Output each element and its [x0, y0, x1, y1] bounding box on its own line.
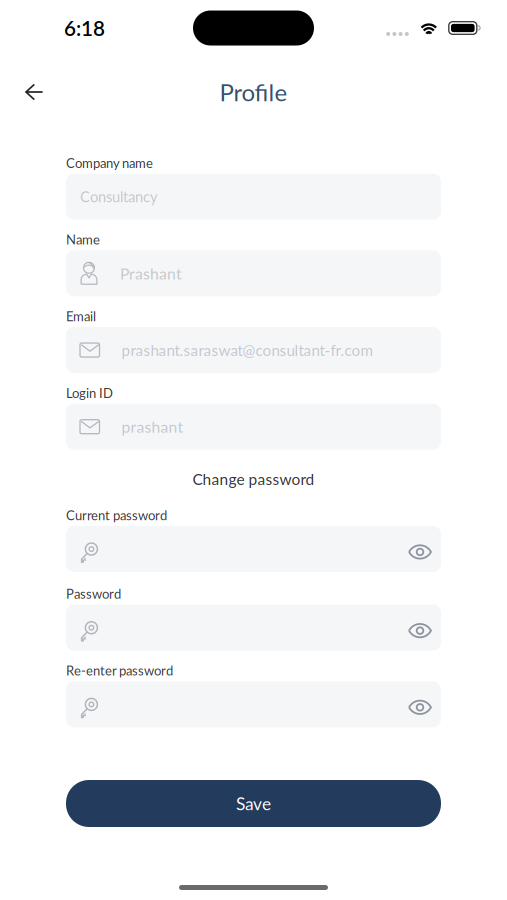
staticText: Re-enter password [66, 663, 173, 678]
staticText: Change password [192, 470, 314, 488]
button[interactable]: Email [66, 327, 441, 373]
staticText: Login ID [66, 385, 113, 401]
button[interactable]: Password [66, 605, 441, 651]
button[interactable]: Re-enter password [66, 681, 441, 727]
staticText: Profile [219, 78, 287, 106]
staticText: Email [66, 308, 96, 324]
staticText: 6:18 [64, 16, 105, 40]
staticText: Prashant [120, 264, 182, 283]
button[interactable]: Show password [397, 527, 441, 570]
button[interactable]: Show password [397, 683, 441, 726]
button[interactable]: Back [17, 75, 51, 108]
staticText: Company name [66, 155, 153, 171]
staticText: Consultancy [80, 188, 158, 205]
staticText: Current password [66, 507, 167, 523]
staticText: prashant [121, 417, 183, 436]
staticText: Name [66, 232, 100, 247]
button[interactable]: Save [66, 780, 441, 827]
button[interactable]: Name [66, 250, 441, 296]
button[interactable]: Show password [397, 606, 441, 649]
button[interactable]: Current password [66, 526, 441, 572]
staticText: Save [236, 793, 271, 814]
staticText: prashant.saraswat@consultant-fr.com [121, 341, 373, 359]
button[interactable]: Company name [66, 174, 441, 220]
button[interactable]: Login ID [66, 404, 441, 450]
staticText: Password [66, 586, 121, 602]
